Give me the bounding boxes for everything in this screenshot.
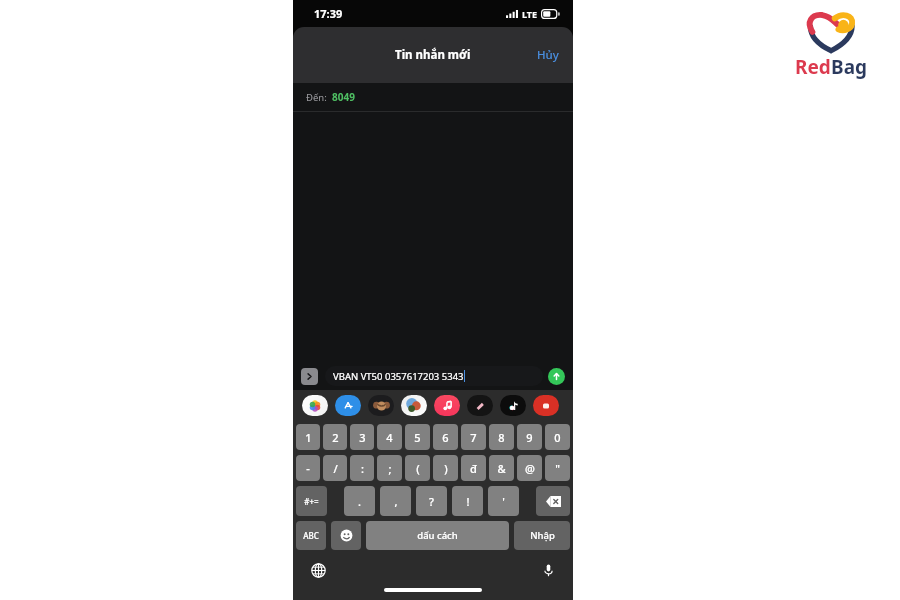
button[interactable]: 1	[296, 424, 320, 450]
button[interactable]: App 3	[401, 395, 427, 416]
staticText: 8	[498, 430, 505, 445]
staticText: #+=	[304, 496, 319, 507]
staticText: Đến:	[306, 91, 327, 104]
staticText: "	[555, 461, 560, 476]
button[interactable]: App 4	[434, 395, 460, 416]
button[interactable]: ABC	[296, 521, 326, 550]
staticText: Bag	[831, 54, 868, 80]
staticText: Tin nhắn mới	[395, 47, 471, 63]
button[interactable]: 0	[545, 424, 570, 450]
button[interactable]: Hủy	[523, 37, 573, 73]
staticText: /	[333, 461, 338, 476]
staticText: @	[525, 461, 535, 476]
button[interactable]: Emoji	[331, 521, 361, 550]
button[interactable]: (	[405, 455, 430, 481]
button[interactable]: :	[350, 455, 374, 481]
button[interactable]: 6	[433, 424, 458, 450]
button[interactable]: @	[517, 455, 542, 481]
button[interactable]: Change keyboard language	[307, 559, 329, 581]
staticText: 3	[359, 430, 366, 445]
staticText: 1	[305, 430, 312, 445]
staticText: 2	[332, 430, 339, 445]
staticText: Red	[795, 54, 831, 80]
staticText: LTE	[522, 8, 538, 20]
button[interactable]: Nhập	[514, 521, 570, 550]
button[interactable]: "	[545, 455, 570, 481]
staticText: 17:39	[314, 6, 343, 21]
button[interactable]: Delete	[536, 486, 570, 516]
staticText: :	[361, 461, 364, 476]
staticText: 7	[470, 430, 477, 445]
staticText: ?	[429, 494, 434, 509]
button[interactable]: .	[344, 486, 375, 516]
button[interactable]: đ	[461, 455, 486, 481]
button[interactable]: '	[488, 486, 519, 516]
button[interactable]: Send	[548, 368, 565, 385]
button[interactable]: )	[433, 455, 458, 481]
button[interactable]: 2	[323, 424, 347, 450]
button[interactable]: Đến:	[293, 83, 573, 111]
button[interactable]: dấu cách	[366, 521, 509, 550]
button[interactable]: Expand apps	[301, 368, 318, 385]
staticText: 5	[414, 430, 421, 445]
staticText: Nhập	[530, 529, 555, 542]
staticText: )	[444, 461, 448, 476]
button[interactable]: #+=	[296, 486, 327, 516]
staticText: .	[358, 494, 361, 509]
button[interactable]: VBAN VT50 0357617203 5343	[325, 366, 543, 386]
button[interactable]: Dictation	[537, 559, 559, 581]
staticText: dấu cách	[417, 529, 458, 542]
staticText: Hủy	[537, 47, 559, 63]
button[interactable]: &	[489, 455, 514, 481]
staticText: VBAN VT50 0357617203 5343	[333, 370, 464, 383]
button[interactable]: !	[452, 486, 483, 516]
button[interactable]: App 0	[302, 395, 328, 416]
staticText: &	[497, 461, 506, 476]
button[interactable]: 4	[377, 424, 402, 450]
staticText: 4	[386, 430, 393, 445]
button[interactable]: App 5	[467, 395, 493, 416]
staticText: -	[306, 461, 310, 476]
staticText: !	[466, 494, 470, 509]
staticText: 0	[554, 430, 561, 445]
staticText: ;	[388, 461, 392, 476]
button[interactable]: App 1	[335, 395, 361, 416]
button[interactable]: 5	[405, 424, 430, 450]
button[interactable]: App 2	[368, 395, 394, 416]
staticText: 8049	[332, 90, 355, 104]
button[interactable]: ,	[380, 486, 411, 516]
button[interactable]: -	[296, 455, 320, 481]
button[interactable]: /	[323, 455, 347, 481]
staticText: đ	[470, 461, 477, 476]
button[interactable]: 3	[350, 424, 374, 450]
button[interactable]: ;	[377, 455, 402, 481]
staticText: '	[502, 494, 505, 509]
button[interactable]: App 7	[533, 395, 559, 416]
button[interactable]: 9	[517, 424, 542, 450]
staticText: 6	[442, 430, 449, 445]
staticText: ABC	[303, 530, 319, 541]
button[interactable]: 7	[461, 424, 486, 450]
button[interactable]: 8	[489, 424, 514, 450]
staticText: (	[416, 461, 420, 476]
staticText: 9	[526, 430, 533, 445]
button[interactable]: App 6	[500, 395, 526, 416]
staticText: ,	[394, 494, 398, 509]
button[interactable]: ?	[416, 486, 447, 516]
